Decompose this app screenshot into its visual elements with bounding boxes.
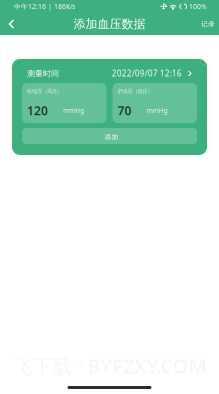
staticText: 飞下载 · BYFZXY.COM — [12, 352, 206, 379]
staticText: 收缩压（高压） — [27, 88, 62, 95]
button[interactable]: Back — [3, 13, 20, 35]
staticText: 70 — [117, 103, 131, 118]
staticText: 100% — [189, 2, 207, 11]
staticText: 测量时间 — [27, 69, 59, 78]
button[interactable]: 2022/09/07 12:16 — [112, 68, 192, 79]
staticText: 中午12:16 | 186K/s — [14, 2, 75, 11]
staticText: 舒张压（低压） — [117, 88, 152, 95]
staticText: mmHg — [146, 106, 167, 115]
staticText: 添加 — [104, 133, 118, 141]
button[interactable]: 记录 — [198, 13, 218, 35]
button[interactable]: 添加 — [22, 128, 197, 144]
staticText: 记录 — [201, 20, 215, 28]
staticText: 添加血压数据 — [73, 17, 145, 31]
staticText: mmHg — [63, 106, 84, 115]
staticText: 2022/09/07 12:16 — [112, 68, 182, 79]
staticText: 120 — [27, 103, 48, 118]
